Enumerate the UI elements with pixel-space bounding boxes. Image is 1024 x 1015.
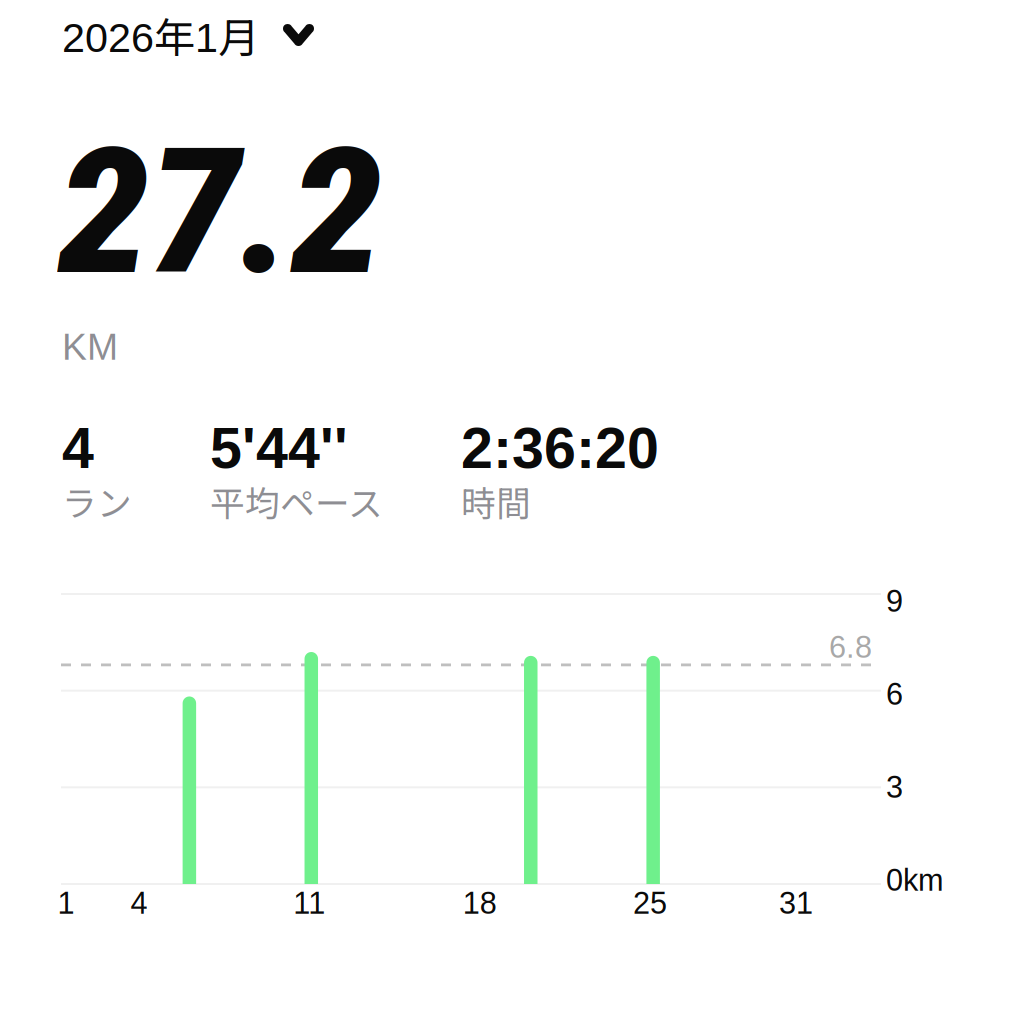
button[interactable]: 2026年1月 (62, 4, 422, 66)
staticText: ラン (62, 476, 132, 526)
staticText: 31 (779, 886, 813, 920)
staticText: 時間 (461, 476, 531, 526)
staticText: KM (62, 326, 118, 368)
staticText: 9 (886, 584, 903, 618)
staticText: 平均ペース (210, 476, 383, 526)
staticText: 5'44'' (210, 416, 348, 480)
staticText: 6 (886, 677, 903, 711)
staticText: 3 (886, 770, 903, 804)
staticText: 27.2 (58, 110, 382, 315)
staticText: 6.8 (829, 630, 872, 664)
staticText: 18 (463, 886, 497, 920)
staticText: 4 (62, 416, 94, 480)
staticText: 25 (633, 886, 667, 920)
staticText: 1 (57, 886, 74, 920)
staticText: 11 (293, 886, 325, 920)
staticText: 2:36:20 (461, 416, 659, 480)
staticText: 0km (886, 863, 944, 897)
staticText: 4 (130, 886, 147, 920)
staticText: 2026年1月 (62, 5, 259, 65)
